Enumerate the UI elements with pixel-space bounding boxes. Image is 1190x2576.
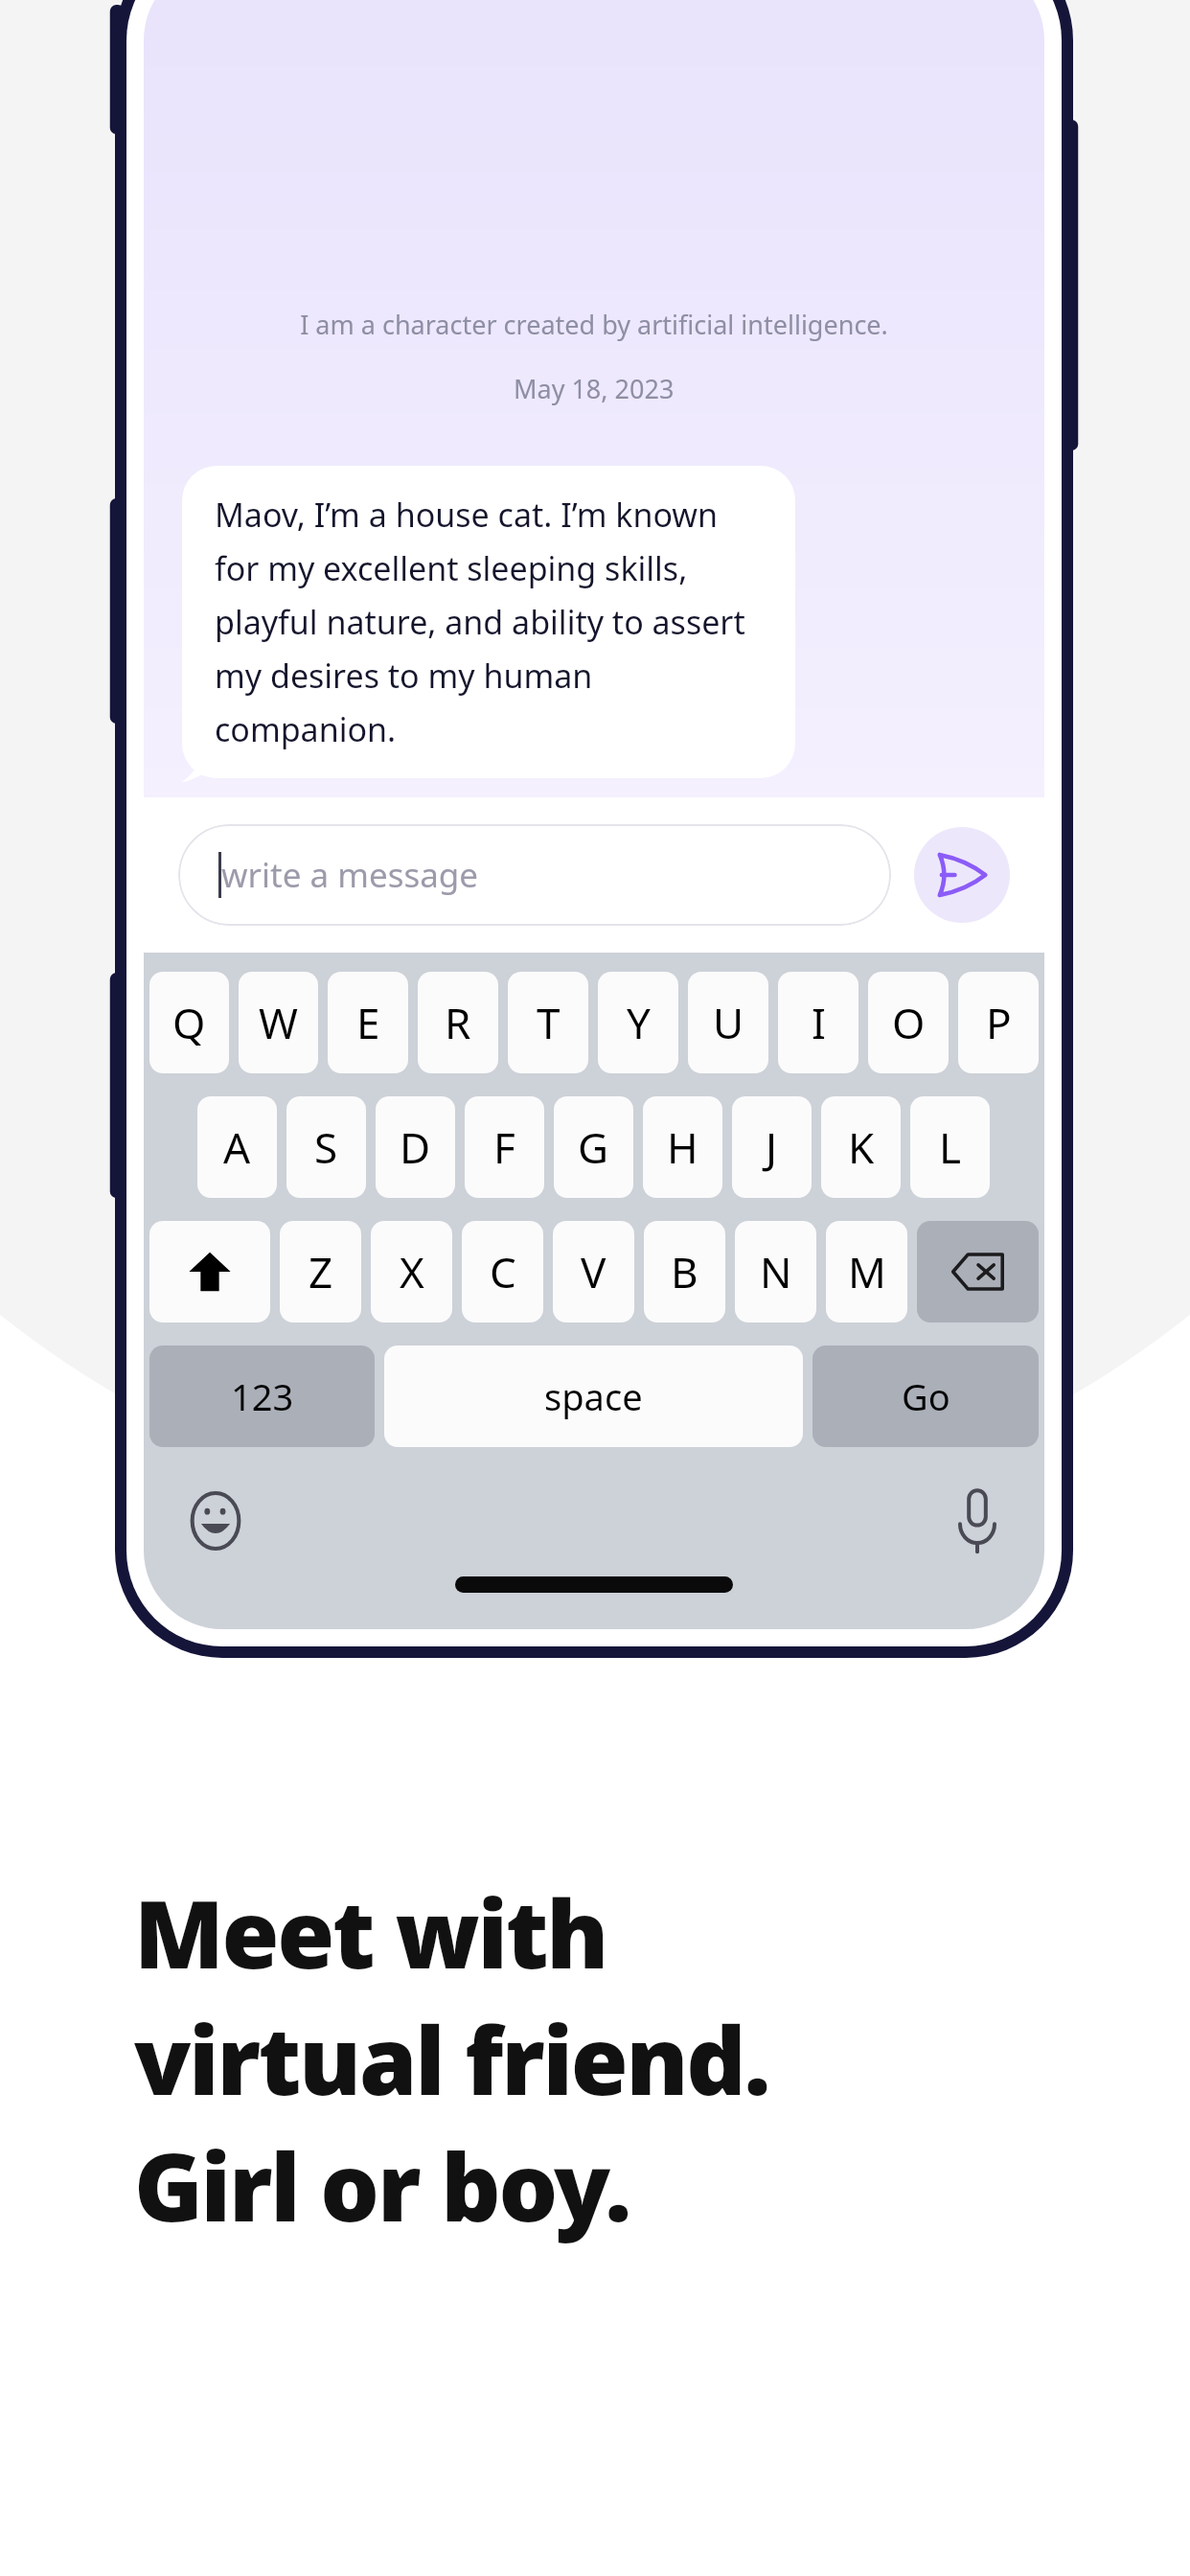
staticText: A [223,1118,251,1176]
staticText: C [490,1243,516,1300]
button[interactable]: Send [914,827,1010,923]
staticText: virtual friend. [134,1995,769,2122]
staticText: write a message [221,852,479,898]
button[interactable]: V [553,1221,634,1322]
button[interactable]: J [732,1096,812,1198]
staticText: space [544,1371,643,1421]
button[interactable]: H [643,1096,722,1198]
button[interactable]: O [868,972,949,1073]
staticText: O [892,994,926,1051]
button[interactable]: I [778,972,858,1073]
staticText: J [766,1118,778,1176]
staticText: Go [902,1371,950,1421]
button[interactable]: Go [812,1345,1039,1447]
button[interactable]: X [371,1221,452,1322]
button[interactable]: S [286,1096,366,1198]
staticText: I [812,994,826,1051]
button[interactable]: W [239,972,318,1073]
staticText: K [848,1118,875,1176]
button[interactable]: M [826,1221,907,1322]
button[interactable]: K [821,1096,901,1198]
staticText: I am a character created by artificial i… [300,307,888,342]
staticText: H [667,1118,698,1176]
staticText: S [314,1118,338,1176]
staticText: F [493,1118,515,1176]
button[interactable]: F [465,1096,544,1198]
button[interactable]: T [508,972,588,1073]
button[interactable]: Y [598,972,678,1073]
staticText: Maov, I’m a house cat. I’m known for my … [215,493,763,751]
button[interactable]: U [688,972,768,1073]
staticText: T [537,994,561,1051]
staticText: Z [309,1243,333,1300]
staticText: W [259,994,298,1051]
button[interactable]: N [735,1221,816,1322]
button[interactable]: B [644,1221,725,1322]
staticText: L [939,1118,962,1176]
staticText: V [581,1243,606,1300]
staticText: Y [627,994,651,1051]
staticText: U [713,994,744,1051]
staticText: D [400,1118,431,1176]
staticText: 123 [231,1371,294,1421]
button[interactable]: Maov, I’m a house cat. I’m known for my … [182,466,795,778]
staticText: Girl or boy. [134,2122,629,2248]
button[interactable]: space [384,1345,803,1447]
button[interactable]: C [462,1221,543,1322]
staticText: M [848,1243,886,1300]
button[interactable]: Voice input [958,1489,996,1552]
button[interactable]: E [328,972,408,1073]
button[interactable]: Q [149,972,229,1073]
button[interactable]: L [910,1096,990,1198]
button[interactable]: Z [280,1221,361,1322]
button[interactable]: write a message [178,824,891,926]
staticText: P [986,994,1012,1051]
staticText: N [760,1243,792,1300]
button[interactable]: G [554,1096,633,1198]
staticText: R [445,994,471,1051]
staticText: E [356,994,380,1051]
button[interactable]: 123 [149,1345,375,1447]
button[interactable]: A [197,1096,277,1198]
staticText: G [578,1118,609,1176]
staticText: Meet with [134,1869,607,1995]
staticText: Q [172,994,206,1051]
button[interactable]: Shift [149,1221,270,1322]
button[interactable]: R [418,972,498,1073]
button[interactable]: D [376,1096,455,1198]
button[interactable]: Emoji [188,1493,243,1549]
staticText: B [671,1243,698,1300]
staticText: May 18, 2023 [514,371,675,406]
staticText: X [400,1243,424,1300]
button[interactable]: Backspace [917,1221,1039,1322]
button[interactable]: P [958,972,1039,1073]
